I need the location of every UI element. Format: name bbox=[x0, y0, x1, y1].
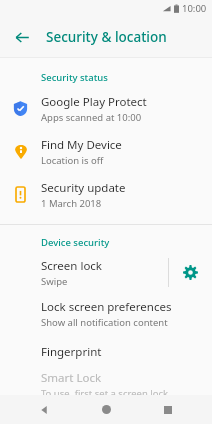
staticText: Screen lock bbox=[41, 258, 103, 274]
button[interactable]: Back bbox=[28, 395, 62, 424]
button[interactable]: Google Play Protect bbox=[0, 87, 212, 130]
button[interactable]: Security update bbox=[0, 173, 212, 216]
button[interactable]: Recents bbox=[151, 395, 185, 424]
staticText: Location is off bbox=[41, 154, 104, 167]
staticText: Show all notification content bbox=[41, 316, 168, 329]
staticText: Security status bbox=[41, 71, 108, 84]
button[interactable]: Smart Lock bbox=[0, 370, 212, 395]
button[interactable]: Find My Device bbox=[0, 130, 212, 173]
button[interactable]: Fingerprint bbox=[0, 334, 212, 370]
staticText: Fingerprint bbox=[41, 344, 102, 360]
staticText: Swipe bbox=[41, 275, 68, 288]
button[interactable]: Screen lock settings bbox=[169, 252, 212, 293]
staticText: Security update bbox=[41, 180, 126, 196]
staticText: To use, first set a screen lock bbox=[41, 387, 169, 395]
staticText: Apps scanned at 10:00 bbox=[41, 111, 142, 124]
button[interactable]: Screen lock bbox=[0, 252, 168, 293]
button[interactable]: Home bbox=[89, 395, 123, 424]
staticText: Lock screen preferences bbox=[41, 299, 172, 315]
button[interactable]: Lock screen preferences bbox=[0, 293, 212, 334]
staticText: Smart Lock bbox=[41, 370, 102, 386]
staticText: 10:00 bbox=[182, 2, 207, 15]
staticText: Google Play Protect bbox=[41, 94, 147, 110]
staticText: Find My Device bbox=[41, 137, 122, 153]
staticText: 1 March 2018 bbox=[41, 197, 102, 210]
button[interactable]: Back bbox=[7, 22, 37, 52]
staticText: Device security bbox=[41, 236, 110, 249]
staticText: Security & location bbox=[46, 28, 167, 46]
